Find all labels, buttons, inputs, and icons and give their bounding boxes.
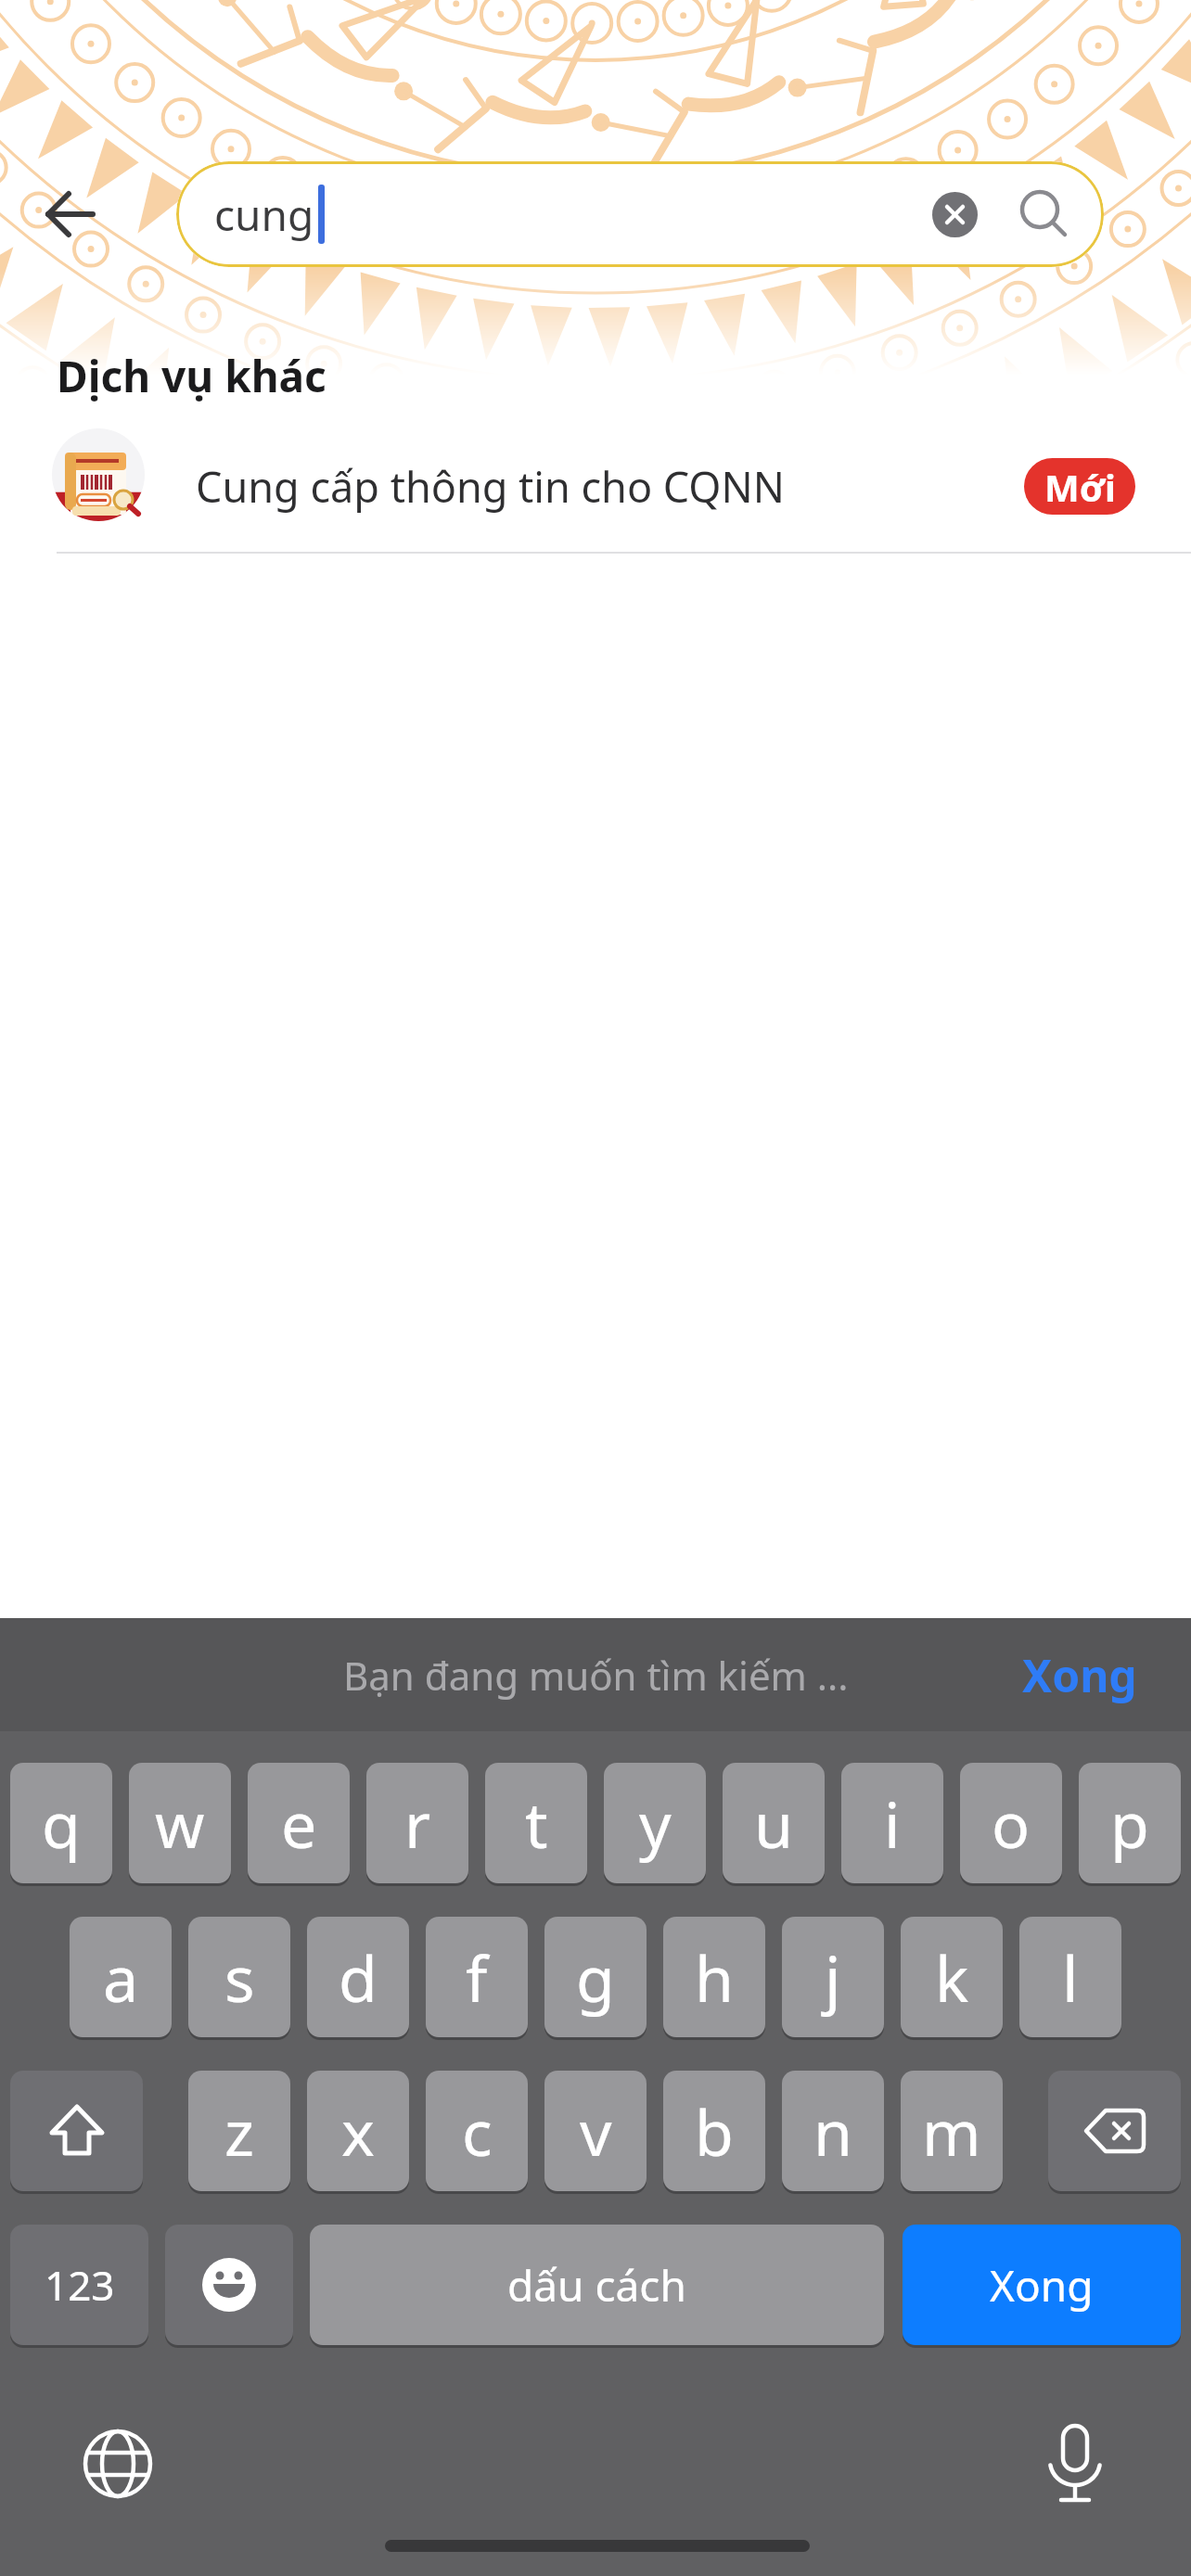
staticText: v <box>580 2088 612 2174</box>
staticText: n <box>813 2088 853 2174</box>
button[interactable]: w <box>129 1763 231 1883</box>
button[interactable]: k <box>901 1917 1003 2037</box>
staticText: b <box>695 2088 734 2174</box>
staticText: m <box>922 2088 981 2174</box>
staticText: j <box>825 1934 841 2021</box>
button[interactable] <box>1028 2417 1122 2511</box>
staticText: d <box>339 1934 378 2021</box>
button[interactable]: p <box>1079 1763 1181 1883</box>
staticText: Mới <box>1044 462 1116 512</box>
button[interactable]: b <box>663 2071 765 2191</box>
button[interactable]: a <box>70 1917 172 2037</box>
button[interactable]: Cung cấp thông tin cho CQNN <box>0 419 1191 553</box>
staticText: Xong <box>990 2256 1094 2315</box>
button[interactable]: h <box>663 1917 765 2037</box>
button[interactable]: dấu cách <box>310 2225 884 2345</box>
staticText: o <box>992 1780 1031 1867</box>
button[interactable] <box>932 192 978 237</box>
button[interactable]: s <box>188 1917 290 2037</box>
button[interactable]: 123 <box>10 2225 148 2345</box>
button[interactable]: Xong <box>1022 1645 1137 1705</box>
staticText: i <box>884 1780 901 1867</box>
staticText: y <box>639 1780 672 1867</box>
staticText: Xong <box>1022 1645 1137 1705</box>
button[interactable]: Xong <box>903 2225 1181 2345</box>
staticText: s <box>224 1934 255 2021</box>
staticText: Cung cấp thông tin cho CQNN <box>196 458 785 515</box>
button[interactable]: i <box>841 1763 943 1883</box>
staticText: r <box>404 1780 431 1867</box>
button[interactable]: t <box>485 1763 587 1883</box>
button[interactable] <box>70 2417 165 2511</box>
staticText: q <box>42 1780 81 1867</box>
button[interactable] <box>165 2225 293 2345</box>
button[interactable]: g <box>544 1917 647 2037</box>
button[interactable]: o <box>960 1763 1062 1883</box>
staticText: u <box>754 1780 794 1867</box>
staticText: e <box>281 1780 317 1867</box>
button[interactable]: y <box>604 1763 706 1883</box>
staticText: a <box>103 1934 139 2021</box>
button[interactable]: z <box>188 2071 290 2191</box>
staticText: z <box>224 2088 254 2174</box>
button[interactable]: l <box>1019 1917 1121 2037</box>
button[interactable]: d <box>307 1917 409 2037</box>
staticText: cung <box>214 185 314 244</box>
button[interactable]: r <box>366 1763 468 1883</box>
staticText: g <box>576 1934 615 2021</box>
staticText: p <box>1110 1780 1149 1867</box>
button[interactable]: u <box>723 1763 825 1883</box>
button[interactable] <box>10 2071 143 2191</box>
staticText: l <box>1062 1934 1079 2021</box>
staticText: Bạn đang muốn tìm kiếm ... <box>343 1649 849 1702</box>
button[interactable]: x <box>307 2071 409 2191</box>
button[interactable]: f <box>426 1917 528 2037</box>
staticText: h <box>695 1934 735 2021</box>
staticText: Dịch vụ khác <box>57 347 327 405</box>
staticText: dấu cách <box>507 2256 686 2315</box>
staticText: f <box>466 1934 488 2021</box>
staticText: k <box>935 1934 969 2021</box>
staticText: t <box>525 1780 548 1867</box>
staticText: w <box>155 1780 205 1867</box>
button[interactable]: c <box>426 2071 528 2191</box>
button[interactable]: q <box>10 1763 112 1883</box>
button[interactable] <box>1048 2071 1181 2191</box>
button[interactable]: j <box>782 1917 884 2037</box>
button[interactable]: m <box>901 2071 1003 2191</box>
button[interactable]: v <box>544 2071 647 2191</box>
staticText: c <box>462 2088 493 2174</box>
button[interactable] <box>26 168 115 261</box>
button[interactable]: n <box>782 2071 884 2191</box>
staticText: 123 <box>45 2257 115 2313</box>
button[interactable]: cung <box>176 161 1104 267</box>
button[interactable]: e <box>248 1763 350 1883</box>
staticText: x <box>341 2088 375 2174</box>
